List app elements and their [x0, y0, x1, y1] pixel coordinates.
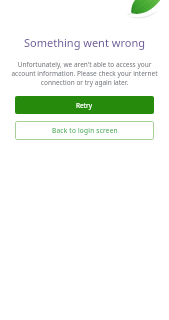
staticText: Something went wrong [24, 35, 145, 50]
staticText: Retry [76, 101, 93, 110]
button[interactable]: Back to login screen [15, 121, 154, 140]
button[interactable]: Retry [15, 96, 154, 114]
staticText: Unfortunately, we aren't able to access … [9, 60, 160, 87]
staticText: Back to login screen [52, 126, 118, 135]
